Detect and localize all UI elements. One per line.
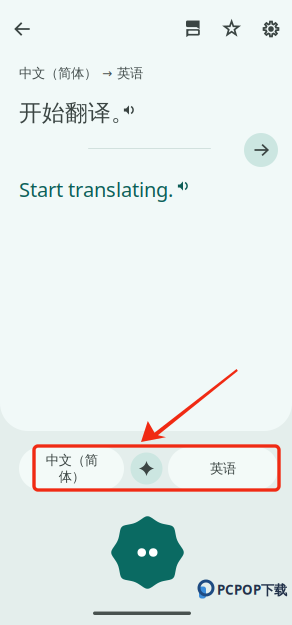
button[interactable]: Listen to translation bbox=[172, 175, 194, 197]
button[interactable]: 英语 bbox=[168, 447, 278, 490]
button[interactable]: Translate bbox=[244, 133, 278, 167]
staticText: 英语 bbox=[210, 460, 236, 477]
button[interactable]: Conversation mode bbox=[174, 7, 212, 51]
staticText: 英语 bbox=[117, 65, 143, 81]
button[interactable]: 中文（简 体） bbox=[19, 447, 124, 490]
staticText: PCPOP下载 bbox=[217, 581, 287, 598]
button[interactable]: Back bbox=[0, 7, 44, 51]
staticText: 中文（简体） bbox=[19, 65, 97, 81]
button[interactable]: Settings bbox=[252, 7, 290, 51]
button[interactable]: Saved bbox=[213, 7, 251, 51]
staticText: 开始翻译。 bbox=[19, 99, 134, 127]
button[interactable]: 中文（简体） bbox=[19, 65, 143, 81]
staticText: 中文（简 体） bbox=[45, 452, 97, 485]
button[interactable]: Listen to source bbox=[118, 99, 140, 121]
button[interactable]: Gemini assistant bbox=[110, 515, 185, 590]
button[interactable]: Swap languages bbox=[125, 447, 168, 490]
staticText: Start translating. bbox=[19, 176, 173, 203]
staticText: → bbox=[102, 66, 112, 80]
